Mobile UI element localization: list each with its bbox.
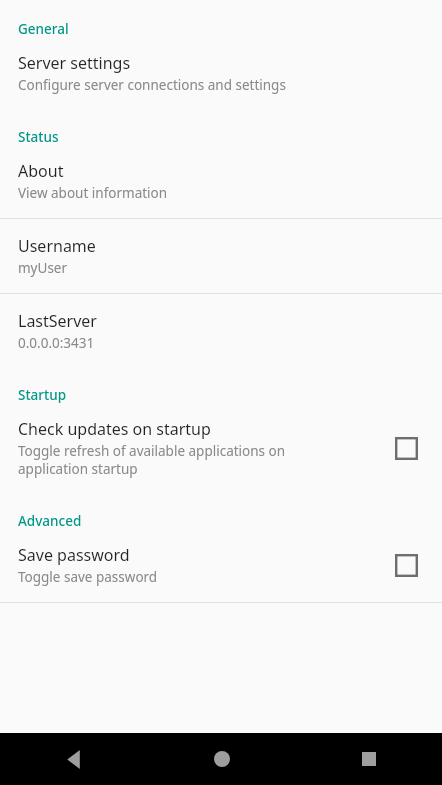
staticText: Status bbox=[18, 128, 59, 146]
button[interactable]: Username bbox=[0, 219, 442, 293]
staticText: LastServer bbox=[18, 310, 97, 332]
staticText: myUser bbox=[18, 259, 68, 277]
button[interactable]: Recent apps bbox=[295, 733, 442, 785]
button[interactable]: Check updates on startup bbox=[386, 428, 426, 468]
button[interactable]: Home bbox=[148, 733, 295, 785]
staticText: Username bbox=[18, 235, 96, 257]
button[interactable]: LastServer bbox=[0, 294, 442, 368]
staticText: Advanced bbox=[18, 512, 82, 530]
staticText: Configure server connections and setting… bbox=[18, 76, 286, 94]
button[interactable]: Save password bbox=[0, 530, 442, 602]
button[interactable]: Check updates on startup bbox=[0, 404, 442, 494]
staticText: Toggle save password bbox=[18, 568, 158, 586]
staticText: Check updates on startup bbox=[18, 418, 211, 440]
staticText: Startup bbox=[18, 386, 67, 404]
staticText: General bbox=[18, 20, 69, 38]
staticText: View about information bbox=[18, 184, 168, 202]
button[interactable]: Back bbox=[0, 733, 148, 785]
staticText: Save password bbox=[18, 544, 130, 566]
button[interactable]: About bbox=[0, 146, 442, 218]
staticText: Toggle refresh of available applications… bbox=[18, 442, 318, 478]
button[interactable]: Save password bbox=[386, 545, 426, 585]
staticText: About bbox=[18, 160, 64, 182]
staticText: Server settings bbox=[18, 52, 131, 74]
staticText: 0.0.0.0:3431 bbox=[18, 334, 95, 352]
button[interactable]: Server settings bbox=[0, 38, 442, 110]
